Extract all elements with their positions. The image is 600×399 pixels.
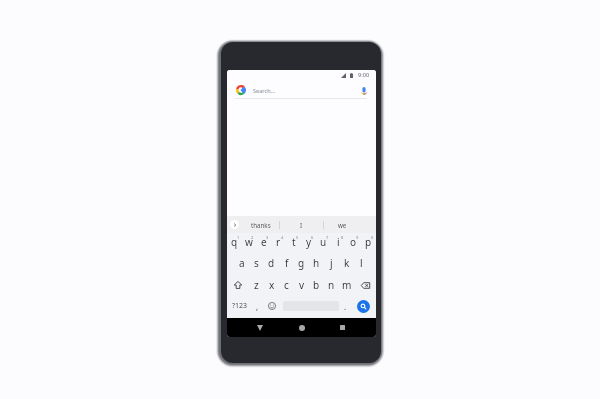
staticText: h [313, 256, 320, 270]
staticText: we [338, 221, 347, 229]
staticText: , [256, 301, 259, 312]
staticText: f [285, 256, 289, 270]
button[interactable]: u [316, 231, 331, 253]
button[interactable]: x [264, 274, 279, 296]
staticText: 9:00 [358, 71, 370, 79]
staticText: 8 [341, 235, 344, 240]
staticText: b [313, 278, 320, 292]
button[interactable]: Shift [227, 274, 249, 296]
other: Voice search [361, 87, 367, 95]
staticText: Search... [253, 87, 276, 95]
staticText: u [320, 235, 327, 249]
staticText: d [268, 256, 275, 270]
button[interactable]: z [249, 274, 264, 296]
staticText: w [245, 235, 253, 249]
button[interactable]: y [301, 231, 316, 253]
button[interactable]: Backspace [354, 274, 376, 296]
button[interactable]: p [361, 231, 376, 253]
staticText: c [284, 278, 289, 292]
button[interactable]: . [338, 295, 352, 317]
staticText: I [300, 221, 303, 229]
staticText: p [365, 235, 372, 249]
staticText: 0 [371, 235, 374, 240]
button[interactable]: a [234, 252, 249, 274]
button[interactable]: t [286, 231, 301, 253]
staticText: z [254, 278, 259, 292]
button[interactable]: r [271, 231, 286, 253]
button[interactable]: f [279, 252, 294, 274]
staticText: 7 [326, 235, 329, 240]
staticText: r [276, 235, 281, 249]
button[interactable]: Home [287, 318, 316, 337]
staticText: k [344, 256, 350, 270]
staticText: s [254, 256, 259, 270]
staticText: 2 [251, 235, 254, 240]
button[interactable]: h [309, 252, 324, 274]
staticText: y [306, 235, 312, 249]
staticText: . [344, 301, 347, 312]
button[interactable]: b [309, 274, 324, 296]
button[interactable]: Back [245, 318, 274, 337]
button[interactable]: k [339, 252, 354, 274]
button[interactable]: Search [357, 300, 370, 313]
button[interactable]: g [294, 252, 309, 274]
staticText: l [360, 256, 363, 270]
staticText: v [299, 278, 305, 292]
staticText: m [342, 278, 352, 292]
button[interactable]: I [279, 216, 323, 233]
button[interactable]: w [241, 231, 256, 253]
staticText: 9 [356, 235, 359, 240]
staticText: g [298, 256, 305, 270]
staticText: e [261, 235, 267, 249]
staticText: 1 [237, 235, 240, 240]
button[interactable]: More suggestions [230, 220, 239, 229]
staticText: x [269, 278, 275, 292]
button[interactable]: o [346, 231, 361, 253]
staticText: j [330, 256, 333, 270]
staticText: thanks [251, 221, 271, 229]
button[interactable]: thanks [242, 216, 280, 233]
button[interactable]: ?123 [227, 295, 253, 317]
staticText: 4 [281, 235, 284, 240]
button[interactable]: Recents [328, 318, 357, 337]
staticText: t [292, 235, 296, 249]
button[interactable]: e [256, 231, 271, 253]
button[interactable]: q [227, 231, 241, 253]
staticText: ?123 [232, 301, 248, 311]
staticText: 5 [296, 235, 299, 240]
button[interactable]: n [324, 274, 339, 296]
button[interactable]: Emoji [265, 295, 278, 317]
button[interactable]: v [294, 274, 309, 296]
staticText: q [231, 235, 238, 249]
button[interactable]: i [331, 231, 346, 253]
button[interactable]: c [279, 274, 294, 296]
button[interactable]: l [354, 252, 369, 274]
staticText: i [337, 235, 340, 249]
staticText: 6 [311, 235, 314, 240]
button[interactable]: d [264, 252, 279, 274]
button[interactable]: s [249, 252, 264, 274]
button[interactable]: , [250, 295, 264, 317]
staticText: n [328, 278, 335, 292]
button[interactable]: m [339, 274, 354, 296]
staticText: o [350, 235, 357, 249]
button[interactable]: Search... [227, 82, 376, 99]
staticText: 3 [266, 235, 269, 240]
button[interactable]: we [323, 216, 361, 233]
button[interactable]: j [324, 252, 339, 274]
staticText: a [239, 256, 245, 270]
